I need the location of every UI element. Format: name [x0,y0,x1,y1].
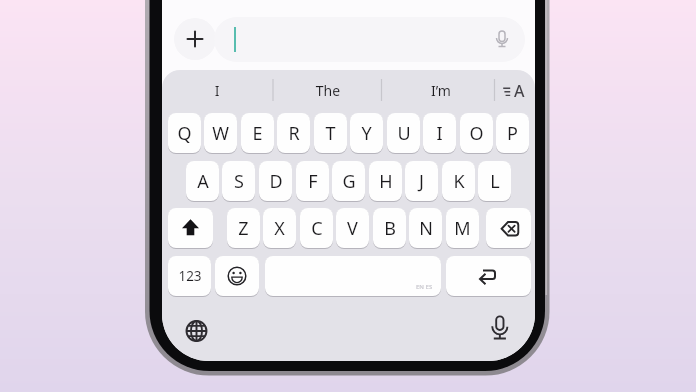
staticText: X [274,216,285,241]
button[interactable]: Y [350,113,383,153]
button[interactable]: V [336,208,369,248]
button[interactable]: W [204,113,237,153]
staticText: E [252,121,263,146]
button[interactable]: D [259,161,292,201]
staticText: EN ES [416,283,433,291]
button[interactable] [486,208,531,248]
staticText: Z [238,216,249,241]
staticText: O [469,121,484,146]
staticText: J [419,169,424,194]
button[interactable]: 123 [168,256,211,296]
button[interactable]: E [241,113,274,153]
staticText: A [514,80,525,102]
button[interactable] [446,256,531,296]
staticText: N [419,216,433,241]
button[interactable]: EN ES [265,256,441,296]
button[interactable]: I [423,113,456,153]
button[interactable]: F [296,161,329,201]
staticText: D [269,169,283,194]
button[interactable]: G [332,161,365,201]
staticText: F [308,169,318,194]
button[interactable]: The [298,81,358,101]
button[interactable]: S [222,161,255,201]
staticText: L [490,169,500,194]
button[interactable]: C [300,208,333,248]
button[interactable]: O [460,113,493,153]
button[interactable]: L [478,161,511,201]
button[interactable]: J [405,161,438,201]
button[interactable]: H [369,161,402,201]
staticText: M [454,216,471,241]
button[interactable]: B [373,208,406,248]
button[interactable]: N [409,208,442,248]
staticText: Y [361,121,372,146]
staticText: K [453,169,465,194]
staticText: H [379,169,393,194]
staticText: A [197,169,209,194]
button[interactable]: K [442,161,475,201]
button[interactable]: I [187,81,247,101]
button[interactable] [486,313,513,349]
staticText: C [311,216,323,241]
staticText: 123 [178,267,202,285]
button[interactable]: P [496,113,529,153]
staticText: R [288,121,300,146]
staticText: V [347,216,358,241]
button[interactable]: Q [168,113,201,153]
staticText: B [384,216,396,241]
staticText: U [397,121,411,146]
button[interactable] [168,208,213,248]
button[interactable] [215,256,259,296]
staticText: P [507,121,518,146]
button[interactable]: U [387,113,420,153]
staticText: I [436,121,443,146]
button[interactable]: A [186,161,219,201]
staticText: S [234,169,244,194]
button[interactable]: I’m [411,81,471,101]
staticText: T [325,121,336,146]
staticText: Q [177,121,192,146]
button[interactable] [174,18,216,60]
button[interactable]: X [263,208,296,248]
staticText: G [342,169,356,194]
button[interactable]: A [496,76,532,106]
button[interactable]: R [277,113,310,153]
button[interactable] [180,314,213,348]
button[interactable]: T [314,113,347,153]
button[interactable]: Z [227,208,260,248]
staticText: W [212,121,229,146]
button[interactable]: M [446,208,479,248]
button[interactable] [214,17,525,62]
